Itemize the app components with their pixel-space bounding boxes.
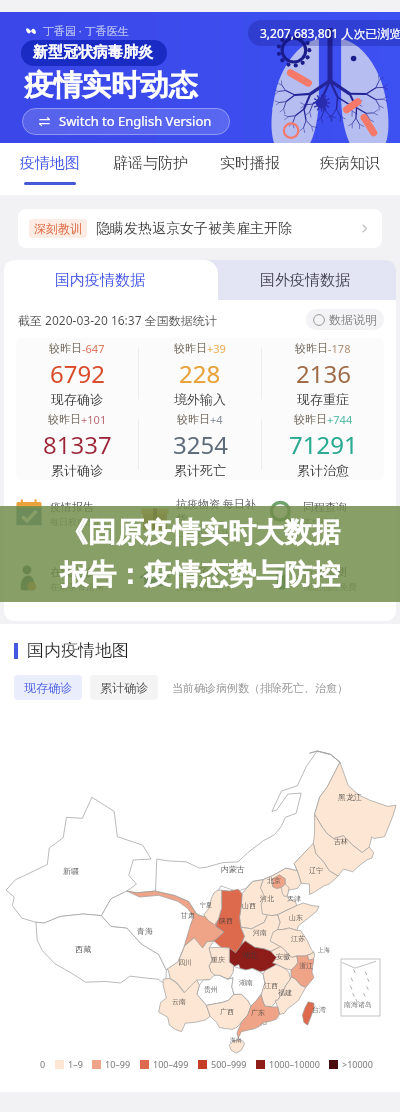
staticText: 江苏 [291, 934, 305, 943]
staticText: 疫情报告 [50, 500, 94, 514]
staticText: 辽宁 [309, 866, 323, 875]
staticText: 100–499 [153, 1058, 189, 1070]
staticText: 河南 [253, 928, 267, 937]
staticText: 同程查询 [303, 500, 347, 514]
staticText: 0 [40, 1058, 46, 1070]
staticText: 较昨日 [174, 341, 207, 355]
staticText: 本地确诊 [303, 516, 339, 527]
staticText: 安徽 [276, 952, 290, 961]
staticText: 在家孕育指南 [50, 581, 104, 592]
staticText: 贵州 [204, 985, 218, 994]
staticText: 云南 [172, 997, 186, 1006]
staticText: 西藏 [75, 944, 91, 954]
staticText: 甘肃 [181, 911, 195, 920]
staticText: 重庆 [211, 955, 225, 964]
staticText: 四川 [178, 958, 192, 967]
button[interactable]: 国内疫情数据 [4, 260, 218, 300]
button[interactable]: 深刻教训 [18, 209, 382, 248]
staticText: 境外输入 [174, 391, 226, 407]
staticText: 累计死亡 [174, 462, 226, 478]
staticText: 现存重症 [297, 391, 349, 407]
staticText: 较昨日 [294, 412, 327, 426]
staticText: 新冠检测 [303, 565, 347, 579]
staticText: 1000–10000 [269, 1058, 320, 1070]
staticText: 228 [179, 357, 221, 390]
button[interactable]: 疾病知识 [300, 143, 400, 195]
staticText: 在线义诊 [50, 565, 94, 579]
staticText: 上海 [318, 946, 330, 954]
staticText: 山西 [242, 901, 256, 910]
staticText: 天津 [287, 894, 301, 903]
staticText: 现存确诊 [24, 680, 72, 695]
staticText: 湖南 [239, 978, 253, 987]
button[interactable]: 国外疫情数据 [194, 260, 396, 300]
button[interactable]: 在线义诊 [10, 561, 136, 595]
staticText: 较昨日 [295, 341, 328, 355]
staticText: 河北 [260, 894, 274, 903]
button[interactable]: 疫情地图 [0, 143, 100, 195]
staticText: 6792 [50, 357, 105, 390]
staticText: 累计确诊 [51, 462, 103, 478]
staticText: -647 [82, 341, 105, 356]
button[interactable]: 口罩预约 [136, 561, 263, 595]
staticText: 江西 [264, 981, 278, 990]
button[interactable]: 抗疫物资 每日补货 [136, 496, 263, 539]
staticText: 数据说明 [329, 312, 377, 327]
button[interactable]: 同程查询 [263, 496, 390, 530]
staticText: 实时播报 [220, 154, 280, 173]
staticText: 青海 [137, 926, 153, 936]
staticText: 黑龙江 [338, 792, 362, 802]
staticText: 疫情实时动态 [24, 67, 198, 104]
button[interactable]: 辟谣与防护 [100, 143, 200, 195]
staticText: 10–99 [105, 1058, 131, 1070]
button[interactable]: 现存确诊 [14, 675, 82, 700]
staticText: 3254 [173, 428, 228, 461]
staticText: 当前确诊病例数（排除死亡、治愈） [172, 681, 348, 695]
staticText: -178 [328, 341, 351, 356]
staticText: 湖北 [242, 950, 258, 960]
staticText: 较昨日 [177, 412, 210, 426]
button[interactable]: Switch to English Version [22, 108, 230, 135]
staticText: 现存确诊 [51, 391, 103, 407]
staticText: 抗疫物资 每日补货 [176, 496, 261, 526]
button[interactable]: 新冠检测 [263, 561, 390, 595]
staticText: 71291 [289, 428, 358, 461]
staticText: 内蒙古 [221, 864, 245, 874]
staticText: 深刻教训 [34, 221, 82, 236]
staticText: +39 [207, 341, 226, 356]
staticText: 每日权威发布 [50, 516, 104, 527]
staticText: 截至 2020-03-20 16:37 全国数据统计 [18, 312, 217, 328]
staticText: 海南 [230, 1036, 242, 1044]
staticText: >10000 [342, 1058, 373, 1070]
staticText: 81337 [43, 428, 112, 461]
staticText: +744 [327, 412, 353, 427]
staticText: 国内疫情数据 [55, 271, 145, 290]
staticText: 广西 [220, 1007, 234, 1016]
staticText: 南海诸岛 [344, 1000, 372, 1009]
staticText: 陕西 [219, 916, 233, 925]
staticText: 国外疫情数据 [260, 271, 350, 290]
staticText: 疫情地图 [20, 154, 80, 173]
staticText: 丁香园 · 丁香医生 [43, 23, 129, 38]
staticText: 北京 [267, 876, 281, 885]
staticText: 2136 [296, 357, 351, 390]
button[interactable]: 疫情报告 [10, 496, 136, 530]
staticText: 累计治愈 [297, 462, 349, 478]
button[interactable]: 数据说明 [306, 309, 384, 330]
staticText: 浙江 [299, 961, 313, 970]
button[interactable]: 实时播报 [200, 143, 300, 195]
staticText: 快递送货上门 [176, 581, 230, 592]
staticText: Switch to English Version [59, 112, 212, 130]
staticText: +101 [81, 412, 107, 427]
staticText: 宁夏 [200, 901, 212, 909]
staticText: 3,207,683,801 人次已浏览 [260, 25, 400, 41]
staticText: 吉林 [334, 837, 348, 846]
button[interactable]: 累计确诊 [90, 675, 158, 700]
staticText: 新疆 [63, 866, 79, 876]
staticText: 国内疫情地图 [27, 640, 129, 661]
staticText: 湖北地区免费 [303, 581, 357, 592]
staticText: 口罩现货直达 [176, 528, 230, 539]
staticText: 台湾 [312, 1005, 326, 1014]
staticText: 福建 [278, 988, 292, 997]
staticText: 辟谣与防护 [113, 154, 188, 173]
